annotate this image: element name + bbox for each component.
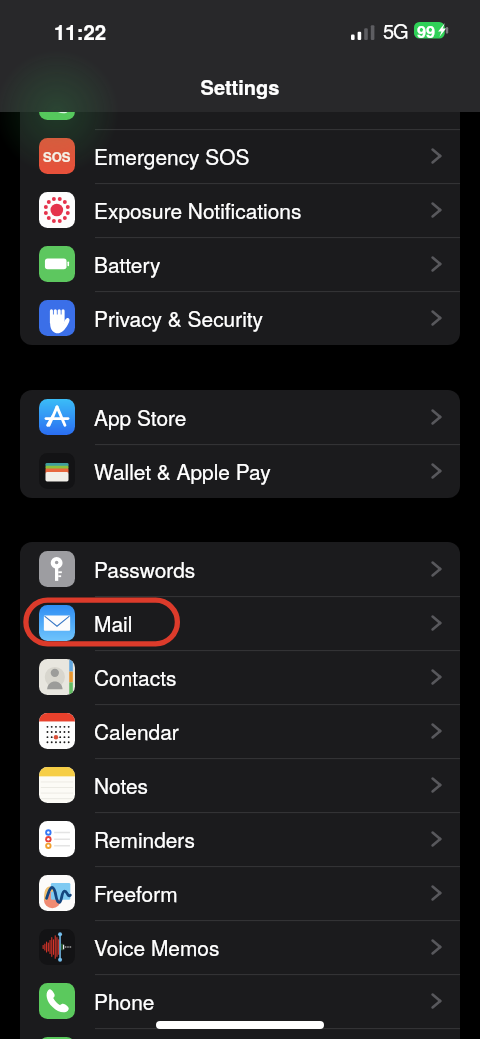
staticText: Calendar <box>94 716 179 746</box>
staticText: Health <box>94 87 155 117</box>
button[interactable]: Wallet & Apple Pay <box>20 444 460 498</box>
button[interactable]: Health <box>20 75 460 129</box>
staticText: Notes <box>94 770 149 800</box>
staticText: 11:22 <box>54 17 107 46</box>
button[interactable]: Mail <box>20 596 460 650</box>
staticText: Freeform <box>94 878 178 908</box>
staticText: Privacy & Security <box>94 303 264 333</box>
button[interactable]: Privacy & Security <box>20 291 460 345</box>
staticText: Voice Memos <box>94 932 220 962</box>
button[interactable]: Messages <box>20 1028 460 1039</box>
staticText: SOS <box>43 147 71 166</box>
other: Cellular signal <box>351 25 375 41</box>
button[interactable]: Contacts <box>20 650 460 704</box>
button[interactable]: Battery <box>20 237 460 291</box>
staticText: 5G <box>383 16 408 45</box>
staticText: Passwords <box>94 554 196 584</box>
staticText: Mail <box>94 608 133 638</box>
button[interactable]: Notes <box>20 758 460 812</box>
staticText: Contacts <box>94 662 177 692</box>
button[interactable]: Passwords <box>20 542 460 596</box>
button[interactable]: Exposure Notifications <box>20 183 460 237</box>
staticText: Settings <box>0 72 480 101</box>
button[interactable]: Voice Memos <box>20 920 460 974</box>
staticText: Exposure Notifications <box>94 195 302 225</box>
staticText: Reminders <box>94 824 195 854</box>
staticText: Emergency SOS <box>94 141 250 171</box>
staticText: App Store <box>94 402 187 432</box>
button[interactable]: App Store <box>20 390 460 444</box>
button[interactable]: SOS <box>20 129 460 183</box>
button[interactable]: Calendar <box>20 704 460 758</box>
button[interactable]: Reminders <box>20 812 460 866</box>
button[interactable]: Freeform <box>20 866 460 920</box>
staticText: Wallet & Apple Pay <box>94 456 271 486</box>
staticText: Phone <box>94 986 155 1016</box>
button[interactable]: Phone <box>20 974 460 1028</box>
staticText: 99 <box>417 20 436 43</box>
staticText: Battery <box>94 249 161 279</box>
